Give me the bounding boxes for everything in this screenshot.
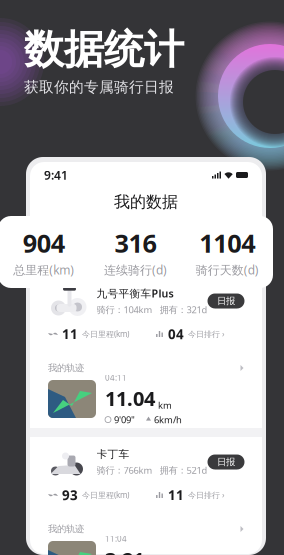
staticText: 今日排行 › — [188, 329, 224, 339]
staticText: 93 — [62, 486, 78, 504]
staticText: 总里程(km) — [13, 262, 74, 278]
staticText: 11.04 — [105, 385, 155, 411]
staticText: 9:41 — [44, 167, 68, 183]
staticText: 今日里程(km) — [82, 329, 129, 339]
staticText: 04 — [168, 325, 184, 343]
staticText: 11 — [168, 486, 184, 504]
button[interactable]: 日报 — [207, 454, 244, 469]
staticText: 04:11 — [105, 372, 127, 383]
staticText: 3.21 — [105, 546, 144, 555]
staticText: 获取你的专属骑行日报 — [24, 78, 174, 96]
staticText: 我的数据 — [114, 192, 178, 212]
staticText: 九号平衡车Plus — [96, 286, 173, 300]
staticText: 6km/h — [154, 413, 182, 426]
staticText: 今日排行 › — [188, 490, 224, 500]
staticText: 日报 — [217, 456, 235, 468]
staticText: 骑行天数(d) — [196, 262, 259, 278]
button[interactable]: 日报 — [207, 293, 244, 308]
staticText: 骑行：766km — [96, 464, 152, 476]
staticText: 9'09" — [114, 413, 135, 426]
staticText: 今日里程(km) — [82, 490, 129, 500]
staticText: km — [158, 399, 172, 411]
staticText: 我的轨迹 — [48, 523, 84, 535]
staticText: 连续骑行(d) — [104, 262, 167, 278]
staticText: 卡丁车 — [96, 448, 129, 461]
staticText: 1104 — [199, 226, 255, 260]
staticText: 拥有：321d — [159, 303, 207, 316]
staticText: 316 — [114, 226, 156, 260]
staticText: 11:04 — [105, 533, 127, 544]
staticText: 我的轨迹 — [48, 362, 84, 374]
button[interactable]: 我的轨迹 — [30, 362, 262, 374]
staticText: 数据统计 — [24, 25, 184, 74]
staticText: 904 — [23, 226, 65, 260]
staticText: 日报 — [217, 295, 235, 307]
button[interactable]: 我的轨迹 — [30, 523, 262, 535]
staticText: 拥有：521d — [159, 464, 207, 476]
staticText: 骑行：104km — [96, 303, 152, 316]
staticText: 11 — [62, 325, 78, 343]
